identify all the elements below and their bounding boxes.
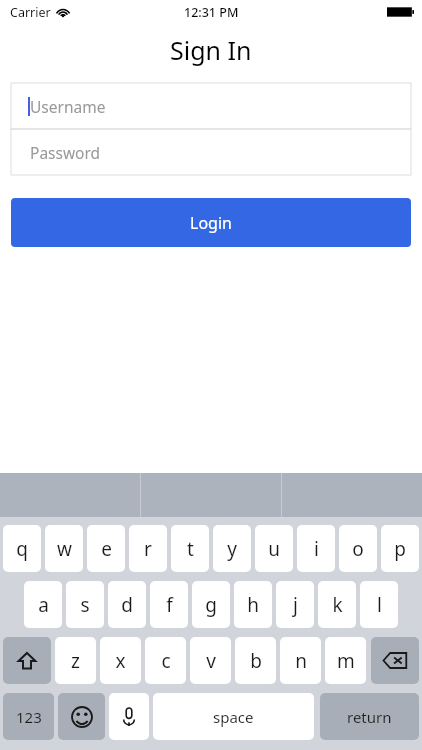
staticText: m bbox=[337, 648, 355, 674]
staticText: Username bbox=[30, 96, 106, 117]
staticText: v bbox=[206, 648, 216, 674]
staticText: o bbox=[352, 536, 364, 562]
button[interactable]: n bbox=[280, 637, 321, 684]
staticText: x bbox=[115, 648, 126, 674]
button[interactable]: m bbox=[325, 637, 366, 684]
button[interactable]: u bbox=[255, 525, 293, 572]
button[interactable]: h bbox=[234, 581, 272, 628]
staticText: h bbox=[247, 592, 259, 618]
staticText: i bbox=[314, 536, 319, 562]
button[interactable]: i bbox=[297, 525, 335, 572]
staticText: Carrier bbox=[10, 4, 51, 21]
staticText: r bbox=[144, 536, 152, 562]
button[interactable]: y bbox=[213, 525, 251, 572]
button[interactable]: j bbox=[276, 581, 314, 628]
button[interactable]: t bbox=[171, 525, 209, 572]
staticText: l bbox=[377, 592, 382, 618]
staticText: c bbox=[161, 648, 171, 674]
staticText: w bbox=[57, 536, 72, 562]
button[interactable]: k bbox=[318, 581, 356, 628]
staticText: Password bbox=[30, 142, 101, 163]
button[interactable]: 123 bbox=[3, 693, 54, 740]
staticText: g bbox=[205, 592, 217, 618]
button[interactable]: a bbox=[24, 581, 62, 628]
button[interactable]: l bbox=[360, 581, 398, 628]
button[interactable]: b bbox=[235, 637, 276, 684]
staticText: y bbox=[227, 536, 237, 562]
staticText: return bbox=[347, 707, 392, 727]
button[interactable]: space bbox=[153, 693, 314, 740]
staticText: 12:31 PM bbox=[184, 4, 239, 21]
button[interactable]: d bbox=[108, 581, 146, 628]
button[interactable]: q bbox=[3, 525, 41, 572]
button[interactable]: e bbox=[87, 525, 125, 572]
button[interactable]: c bbox=[145, 637, 186, 684]
staticText: b bbox=[250, 648, 262, 674]
button[interactable]: s bbox=[66, 581, 104, 628]
button[interactable]: Username bbox=[11, 83, 411, 129]
button[interactable]: z bbox=[55, 637, 96, 684]
staticText: a bbox=[38, 592, 49, 618]
staticText: d bbox=[121, 592, 133, 618]
staticText: u bbox=[268, 536, 280, 562]
button[interactable]: r bbox=[129, 525, 167, 572]
staticText: space bbox=[213, 707, 254, 727]
button[interactable]: Emoji bbox=[58, 693, 105, 740]
button[interactable]: Password bbox=[11, 129, 411, 175]
button[interactable]: Login bbox=[11, 198, 411, 247]
staticText: t bbox=[187, 536, 194, 562]
staticText: f bbox=[166, 592, 173, 618]
staticText: 123 bbox=[16, 707, 42, 727]
staticText: p bbox=[394, 536, 406, 562]
staticText: e bbox=[101, 536, 112, 562]
button[interactable]: Dictation bbox=[109, 693, 149, 740]
button[interactable]: f bbox=[150, 581, 188, 628]
staticText: q bbox=[16, 536, 28, 562]
button[interactable]: g bbox=[192, 581, 230, 628]
button[interactable]: w bbox=[45, 525, 83, 572]
button[interactable]: Backspace bbox=[371, 637, 419, 684]
staticText: z bbox=[71, 648, 80, 674]
staticText: k bbox=[332, 592, 343, 618]
staticText: Sign In bbox=[170, 33, 252, 67]
button[interactable]: v bbox=[190, 637, 231, 684]
button[interactable]: return bbox=[320, 693, 419, 740]
staticText: n bbox=[295, 648, 307, 674]
button[interactable]: Shift bbox=[3, 637, 51, 684]
staticText: s bbox=[80, 592, 90, 618]
button[interactable]: o bbox=[339, 525, 377, 572]
button[interactable]: p bbox=[381, 525, 419, 572]
button[interactable]: x bbox=[100, 637, 141, 684]
staticText: Login bbox=[190, 212, 232, 234]
staticText: j bbox=[293, 592, 298, 618]
